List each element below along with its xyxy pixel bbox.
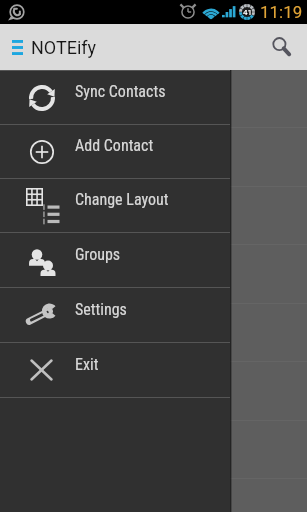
button[interactable]: Exit [0,343,230,397]
button[interactable] [0,479,307,512]
button[interactable]: Sync Contacts [0,71,230,124]
button[interactable] [0,304,307,361]
staticText: Settings [75,300,127,319]
staticText: 11:19 [260,2,303,22]
staticText: Exit [75,355,99,374]
button[interactable] [0,362,307,420]
button[interactable]: Open navigation drawer [0,24,34,70]
button[interactable] [0,421,307,478]
button[interactable]: Groups [0,233,230,287]
button[interactable] [0,187,307,244]
button[interactable]: Search [257,24,307,70]
staticText: NOTEify [31,37,97,58]
button[interactable] [0,70,307,127]
button[interactable] [0,245,307,303]
staticText: Groups [75,245,121,264]
staticText: Change Layout [75,190,169,209]
button[interactable] [0,128,307,186]
staticText: Sync Contacts [75,82,166,101]
staticText: Add Contact [75,136,154,155]
button[interactable]: Change Layout [0,179,230,232]
staticText: 41 [243,8,252,17]
button[interactable]: Settings [0,288,230,342]
button[interactable]: Add Contact [0,125,230,178]
